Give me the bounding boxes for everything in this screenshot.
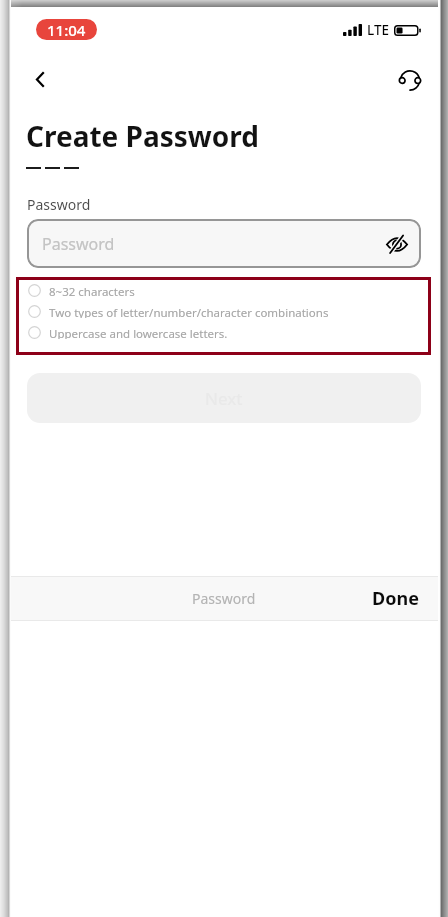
- button[interactable]: Uppercase and lowercase letters.: [28, 326, 419, 339]
- staticText: Uppercase and lowercase letters.: [49, 326, 228, 339]
- staticText: 8~32 characters: [49, 284, 135, 297]
- staticText: LTE: [367, 21, 390, 39]
- button[interactable]: Back: [22, 62, 60, 97]
- button[interactable]: Show password: [382, 229, 412, 259]
- staticText: Password: [42, 233, 115, 255]
- button[interactable]: Done: [372, 586, 419, 611]
- staticText: Password: [27, 195, 91, 214]
- button[interactable]: 8~32 characters: [28, 284, 419, 297]
- button[interactable]: Password: [192, 589, 256, 608]
- staticText: Done: [372, 586, 419, 611]
- staticText: Password: [192, 589, 256, 608]
- button[interactable]: Password: [27, 219, 421, 268]
- staticText: 11:04: [47, 20, 86, 40]
- staticText: Create Password: [26, 117, 259, 155]
- staticText: Two types of letter/number/character com…: [49, 305, 329, 318]
- button[interactable]: Customer support: [391, 62, 429, 97]
- button[interactable]: Two types of letter/number/character com…: [28, 305, 419, 318]
